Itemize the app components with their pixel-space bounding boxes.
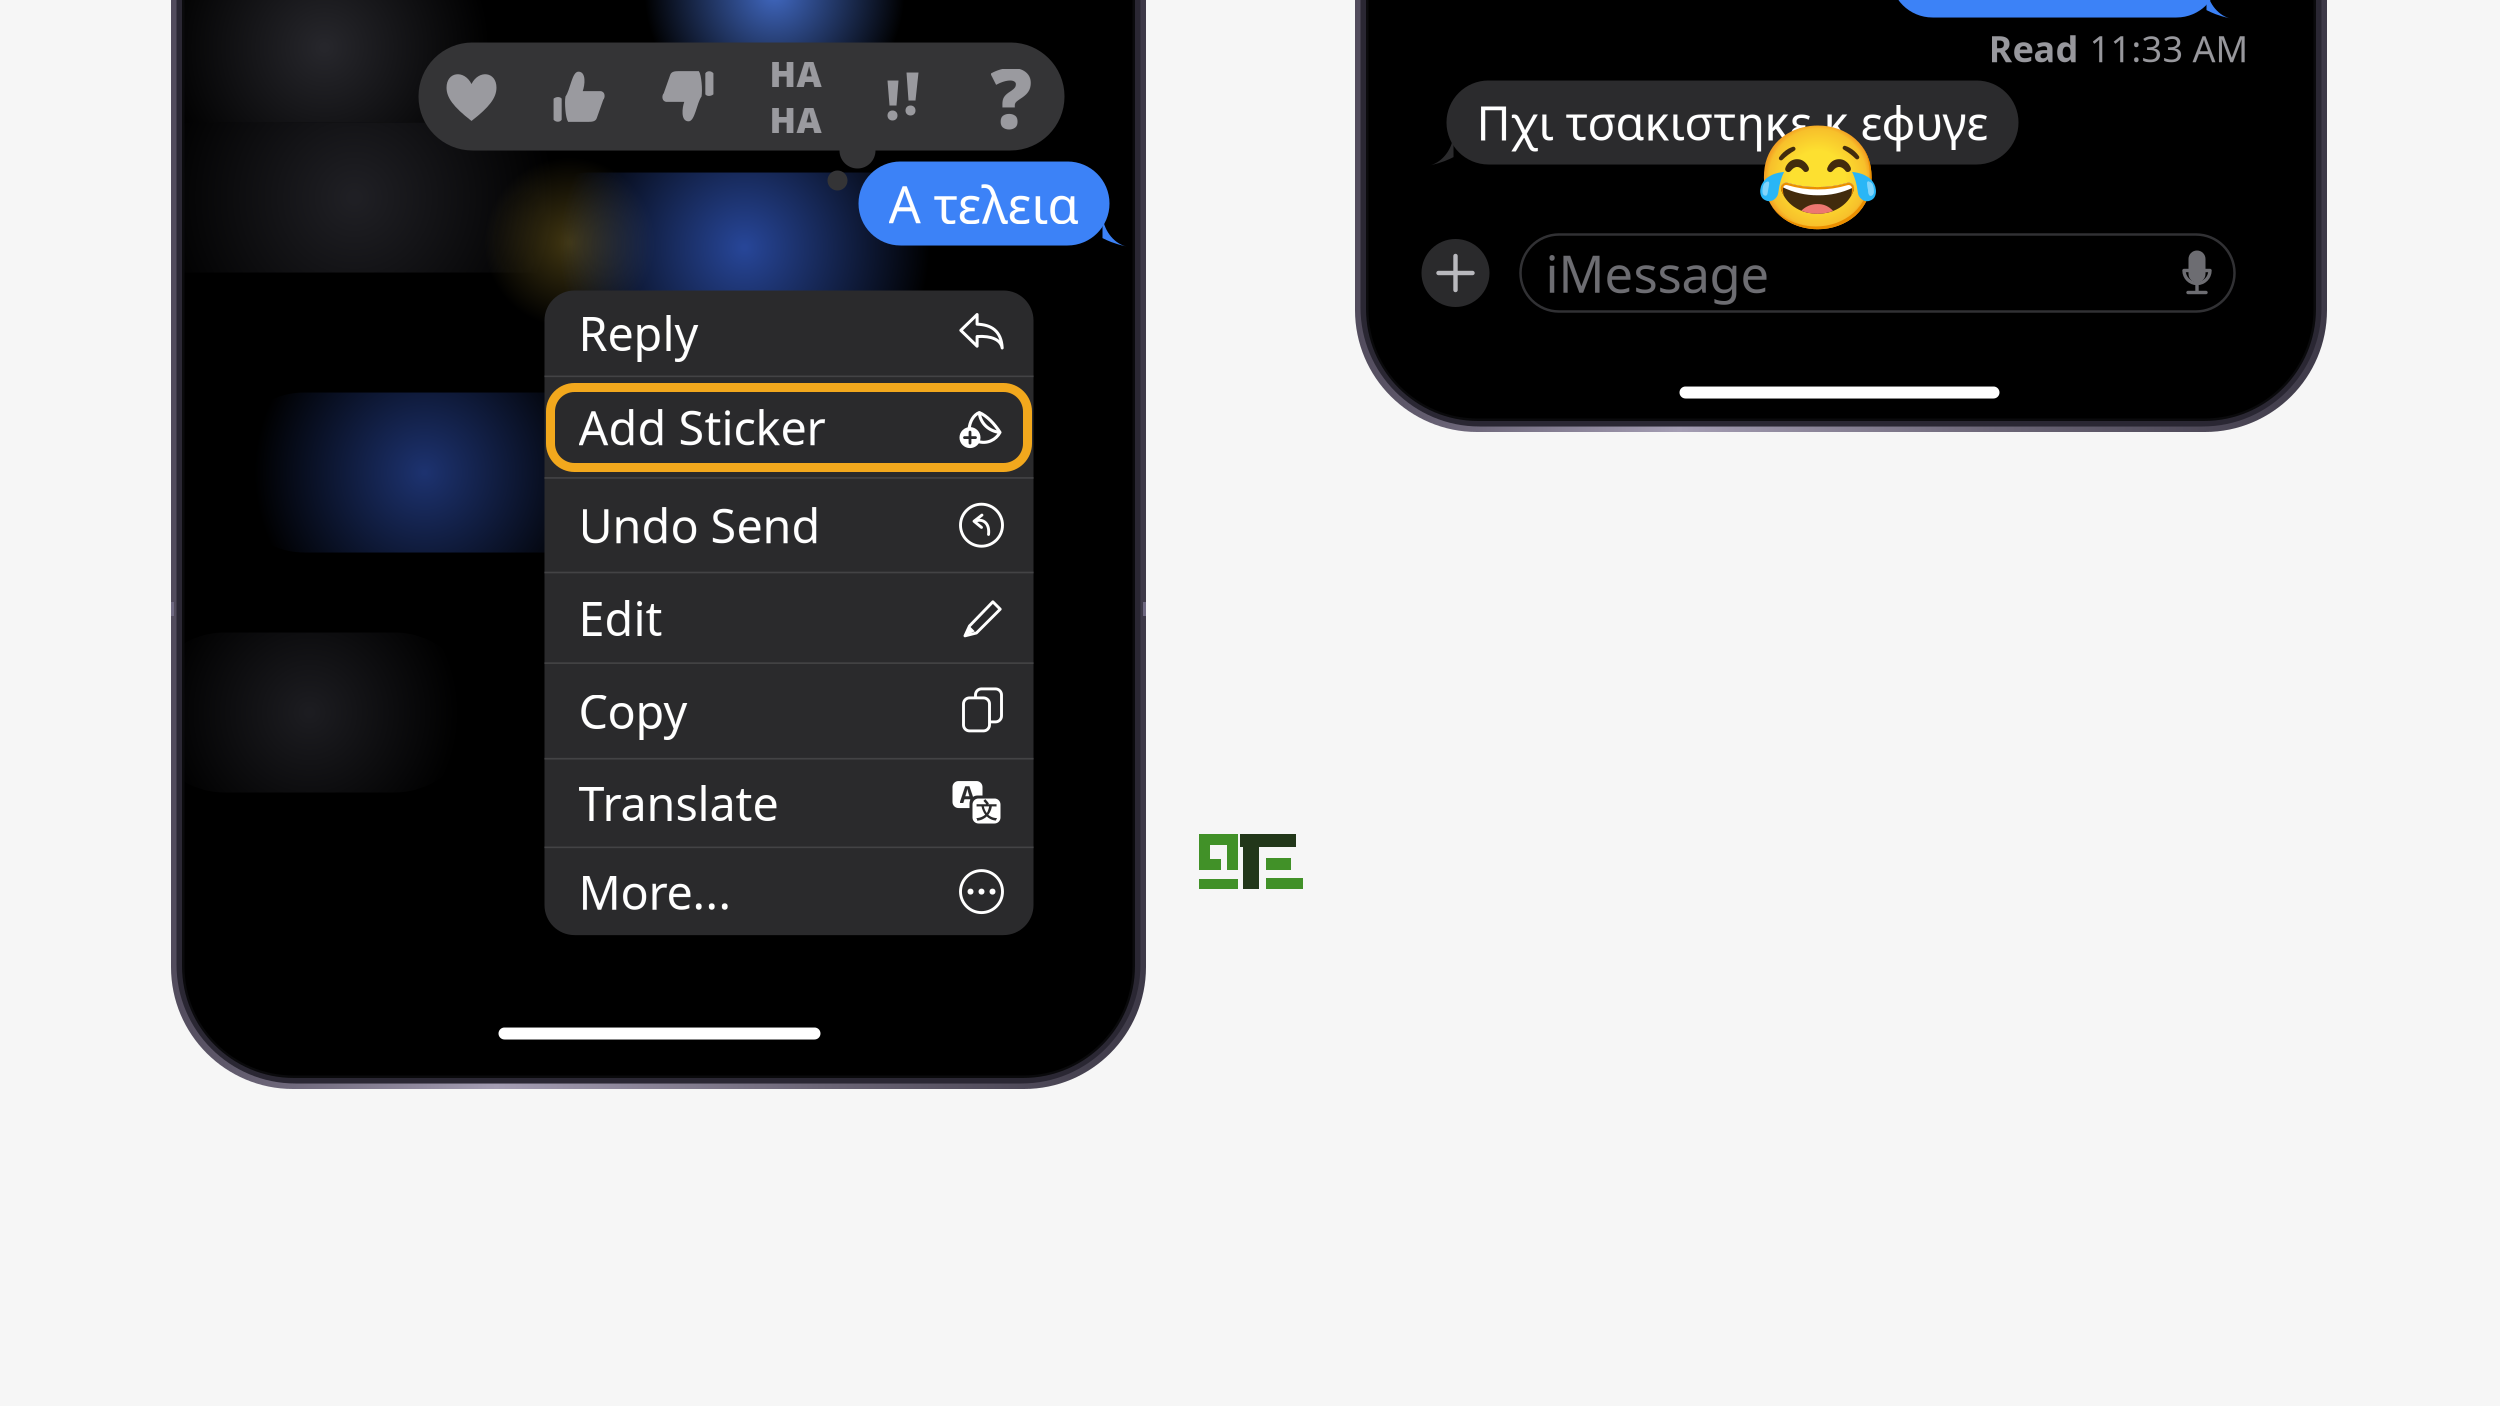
staticText: Reply [578, 302, 698, 364]
staticText: Α τελεια [888, 170, 1079, 237]
staticText: Πχι τσακιστηκε κ εφυγε [1476, 91, 1988, 153]
staticText: 11:33 AM [2089, 24, 2248, 72]
staticText: HA HA [769, 50, 821, 143]
button[interactable]: Love [417, 42, 525, 150]
button[interactable]: Copy [544, 664, 1033, 758]
button[interactable]: Dictate [2181, 249, 2212, 296]
button[interactable]: Haha [741, 42, 849, 150]
button[interactable]: Translate [544, 759, 1033, 846]
staticText: Edit [578, 587, 662, 649]
staticText: More... [578, 861, 731, 923]
staticText: Copy [578, 680, 687, 742]
staticText: Translate [578, 772, 778, 834]
staticText: A [959, 779, 975, 810]
staticText: 😂 [1754, 120, 1880, 236]
button[interactable]: Thumbs up [525, 42, 633, 150]
button[interactable]: Add attachment [1421, 239, 1489, 307]
button[interactable]: Edit [544, 573, 1033, 662]
staticText: Add Sticker [578, 396, 825, 458]
button[interactable]: More... [544, 848, 1033, 935]
staticText: ? [990, 42, 1032, 151]
button[interactable]: Reply [544, 290, 1033, 375]
staticText: iMessage [1545, 239, 1769, 307]
button[interactable]: Question mark [957, 42, 1065, 150]
button[interactable]: Undo Send [544, 479, 1033, 572]
staticText: Read [1988, 24, 2078, 72]
button[interactable]: Thumbs down [633, 42, 741, 150]
staticText: Undo Send [578, 494, 820, 556]
button[interactable]: Add Sticker [544, 377, 1033, 477]
staticText: 文 [976, 798, 997, 824]
button[interactable]: iMessage text field [1520, 234, 2234, 311]
button[interactable]: Exclamation [849, 42, 957, 150]
